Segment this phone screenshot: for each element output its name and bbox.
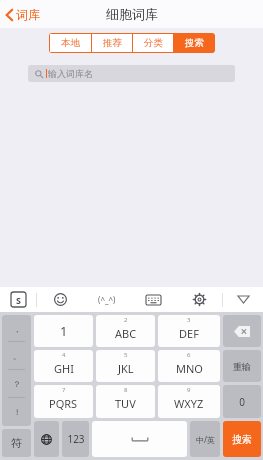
- staticText: 搜索: [185, 37, 204, 49]
- button[interactable]: 9: [158, 385, 220, 418]
- button[interactable]: 输入词库名: [28, 65, 235, 82]
- button[interactable]: Space: [92, 421, 187, 457]
- staticText: 8: [124, 386, 128, 394]
- staticText: ！: [13, 407, 21, 417]
- staticText: ？: [13, 379, 21, 389]
- staticText: ，: [13, 324, 21, 334]
- staticText: GHI: [54, 361, 74, 376]
- button[interactable]: 本地: [50, 34, 91, 52]
- staticText: 2: [124, 316, 128, 324]
- staticText: 1: [60, 322, 68, 340]
- button[interactable]: 。: [2, 342, 31, 370]
- button[interactable]: 0: [223, 385, 261, 418]
- button[interactable]: 重输: [223, 350, 261, 382]
- button[interactable]: 搜索: [174, 34, 214, 52]
- button[interactable]: Delete: [223, 315, 261, 347]
- button[interactable]: Sogou: [0, 287, 36, 312]
- button[interactable]: 1: [34, 315, 93, 347]
- button[interactable]: Keyboard layout: [130, 287, 176, 312]
- button[interactable]: 分类: [133, 34, 173, 52]
- button[interactable]: 搜索: [223, 421, 261, 457]
- staticText: 词库: [16, 7, 40, 22]
- staticText: ABC: [115, 326, 137, 341]
- button[interactable]: 3: [158, 315, 220, 347]
- staticText: MNO: [176, 361, 203, 376]
- button[interactable]: Emoji: [37, 287, 84, 312]
- button[interactable]: Switch language: [34, 421, 59, 457]
- button[interactable]: Settings: [176, 287, 222, 312]
- staticText: 。: [13, 351, 21, 361]
- staticText: 搜索: [232, 433, 252, 446]
- staticText: 符: [11, 436, 22, 450]
- staticText: DEF: [179, 326, 199, 341]
- button[interactable]: Back to 词库: [3, 3, 43, 26]
- staticText: 3: [187, 316, 191, 324]
- button[interactable]: 5: [96, 350, 155, 382]
- staticText: PQRS: [49, 396, 78, 411]
- staticText: 4: [62, 351, 66, 359]
- staticText: 本地: [61, 37, 80, 49]
- staticText: 中/英: [196, 434, 215, 445]
- staticText: S: [16, 294, 21, 306]
- staticText: 5: [124, 351, 128, 359]
- staticText: WXYZ: [174, 396, 204, 411]
- staticText: 重输: [233, 361, 251, 372]
- button[interactable]: 7: [34, 385, 93, 418]
- button[interactable]: ，: [2, 315, 31, 342]
- button[interactable]: Hide keyboard: [223, 287, 263, 312]
- staticText: 6: [187, 351, 191, 359]
- button[interactable]: 8: [96, 385, 155, 418]
- staticText: 123: [67, 432, 85, 446]
- staticText: 0: [239, 395, 245, 409]
- staticText: 分类: [144, 37, 163, 49]
- staticText: 输入词库名: [48, 68, 93, 79]
- button[interactable]: 符: [2, 429, 31, 457]
- button[interactable]: 推荐: [92, 34, 132, 52]
- staticText: 推荐: [103, 37, 122, 49]
- staticText: 细胞词库: [106, 6, 158, 22]
- staticText: 9: [187, 386, 191, 394]
- button[interactable]: 2: [96, 315, 155, 347]
- button[interactable]: 中/英: [190, 421, 220, 457]
- button[interactable]: 4: [34, 350, 93, 382]
- button[interactable]: ！: [2, 398, 31, 426]
- staticText: (^_^): [98, 294, 116, 305]
- button[interactable]: ？: [2, 370, 31, 398]
- staticText: 7: [62, 386, 66, 394]
- staticText: TUV: [115, 396, 136, 411]
- button[interactable]: 123: [62, 421, 89, 457]
- button[interactable]: 6: [158, 350, 220, 382]
- button[interactable]: Kaomoji: [84, 287, 130, 312]
- staticText: JKL: [118, 361, 134, 376]
